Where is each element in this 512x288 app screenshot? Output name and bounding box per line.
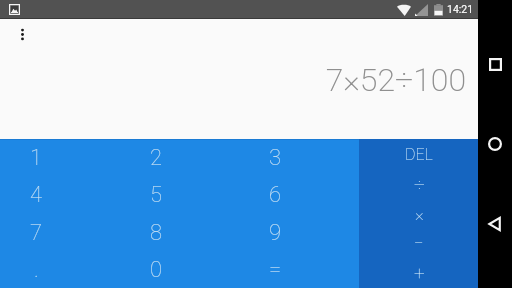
button[interactable]: 2	[120, 139, 240, 176]
button[interactable]: 4	[0, 176, 120, 213]
staticText: 0	[150, 257, 163, 283]
button[interactable]: Recents	[478, 47, 512, 81]
staticText: 4	[30, 182, 43, 208]
button[interactable]: ÷	[359, 169, 479, 199]
staticText: +	[414, 262, 425, 284]
button[interactable]: 8	[120, 214, 240, 251]
staticText: ÷	[414, 173, 425, 195]
staticText: 14:21	[447, 3, 474, 15]
button[interactable]: Back	[478, 207, 512, 241]
staticText: 5	[150, 182, 163, 208]
button[interactable]: 0	[120, 251, 240, 288]
button[interactable]: 7	[0, 214, 120, 251]
button[interactable]: −	[359, 228, 479, 258]
button[interactable]: ×	[359, 199, 479, 229]
staticText: 1	[30, 145, 43, 171]
staticText: .	[34, 257, 39, 283]
staticText: 3	[269, 145, 282, 171]
button[interactable]: More options	[14, 26, 31, 43]
staticText: ×	[415, 204, 424, 224]
button[interactable]: 6	[239, 176, 359, 213]
button[interactable]: 1	[0, 139, 120, 176]
staticText: 6	[269, 182, 282, 208]
staticText: 7×52÷100	[0, 61, 466, 99]
staticText: −	[414, 233, 424, 253]
staticText: DEL	[405, 145, 433, 164]
staticText: 8	[150, 220, 163, 246]
button[interactable]: 9	[239, 214, 359, 251]
button[interactable]: Home	[478, 127, 512, 161]
button[interactable]: +	[359, 258, 479, 288]
staticText: =	[269, 257, 282, 283]
button[interactable]: DEL	[359, 139, 479, 169]
button[interactable]: =	[239, 251, 359, 288]
staticText: 2	[150, 145, 163, 171]
staticText: 9	[269, 220, 282, 246]
button[interactable]: 3	[239, 139, 359, 176]
staticText: 7	[30, 220, 43, 246]
button[interactable]: 5	[120, 176, 240, 213]
